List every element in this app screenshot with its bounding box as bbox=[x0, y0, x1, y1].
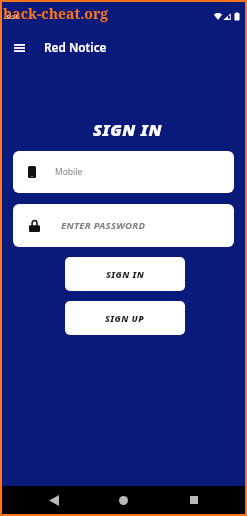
staticText: Mobile bbox=[55, 166, 83, 178]
staticText: SIGN IN bbox=[6, 118, 247, 140]
button[interactable]: Back bbox=[40, 486, 68, 514]
button[interactable]: Home bbox=[109, 486, 137, 514]
staticText: Red Notice bbox=[44, 39, 107, 55]
staticText: SIGN UP bbox=[105, 312, 145, 324]
staticText: ENTER PASSWORD bbox=[61, 219, 146, 232]
button[interactable]: Mobile bbox=[13, 151, 234, 193]
button[interactable]: SIGN UP bbox=[65, 301, 185, 335]
button[interactable]: SIGN IN bbox=[65, 257, 185, 291]
staticText: 9:20 bbox=[7, 13, 19, 21]
staticText: SIGN IN bbox=[106, 268, 145, 280]
button[interactable]: ENTER PASSWORD bbox=[13, 204, 234, 247]
button[interactable]: Menu bbox=[6, 35, 32, 61]
staticText: hack-cheat.org bbox=[3, 4, 109, 23]
button[interactable]: Recent apps bbox=[180, 486, 208, 514]
